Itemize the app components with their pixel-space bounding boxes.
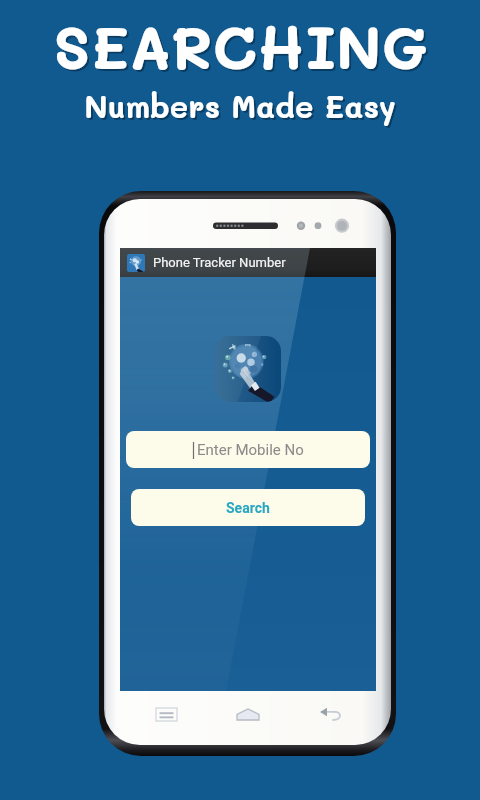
- button[interactable]: Home: [225, 700, 271, 728]
- staticText: SEARCHING: [53, 7, 428, 85]
- button[interactable]: Menu: [143, 700, 189, 728]
- button[interactable]: Search: [131, 489, 365, 526]
- staticText: Numbers Made Easy: [86, 87, 398, 127]
- staticText: Enter Mobile No: [197, 441, 304, 459]
- button[interactable]: Back: [307, 700, 353, 728]
- button[interactable]: Enter Mobile No: [126, 431, 370, 468]
- staticText: SEARCHING: [55, 9, 430, 87]
- staticText: Phone Tracker Number: [153, 255, 286, 270]
- staticText: Numbers Made Easy: [84, 85, 396, 125]
- staticText: Search: [226, 500, 270, 516]
